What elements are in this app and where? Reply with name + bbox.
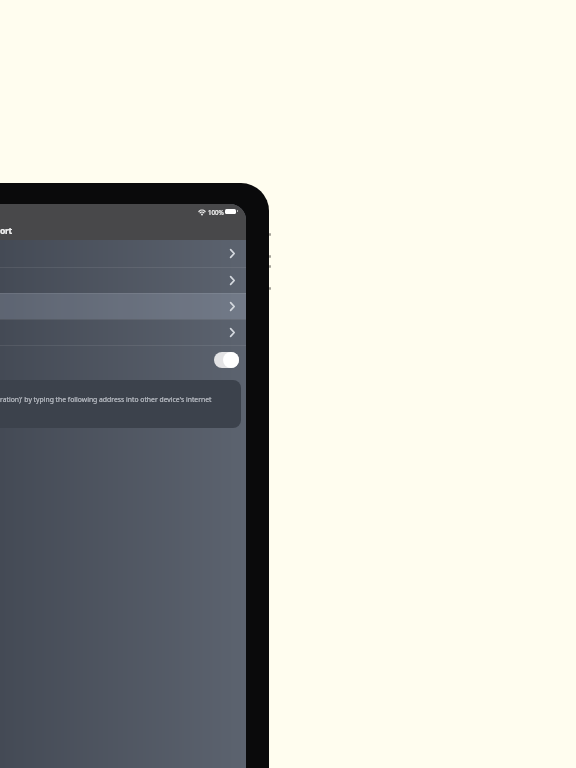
button[interactable] <box>0 267 246 294</box>
staticText: ort <box>0 225 12 237</box>
button[interactable] <box>0 240 246 267</box>
staticText: ration)' by typing the following address… <box>0 395 212 404</box>
button[interactable] <box>0 345 246 372</box>
button[interactable] <box>0 319 246 346</box>
button[interactable] <box>0 293 246 320</box>
button[interactable] <box>214 352 239 368</box>
staticText: 100% <box>208 208 224 216</box>
